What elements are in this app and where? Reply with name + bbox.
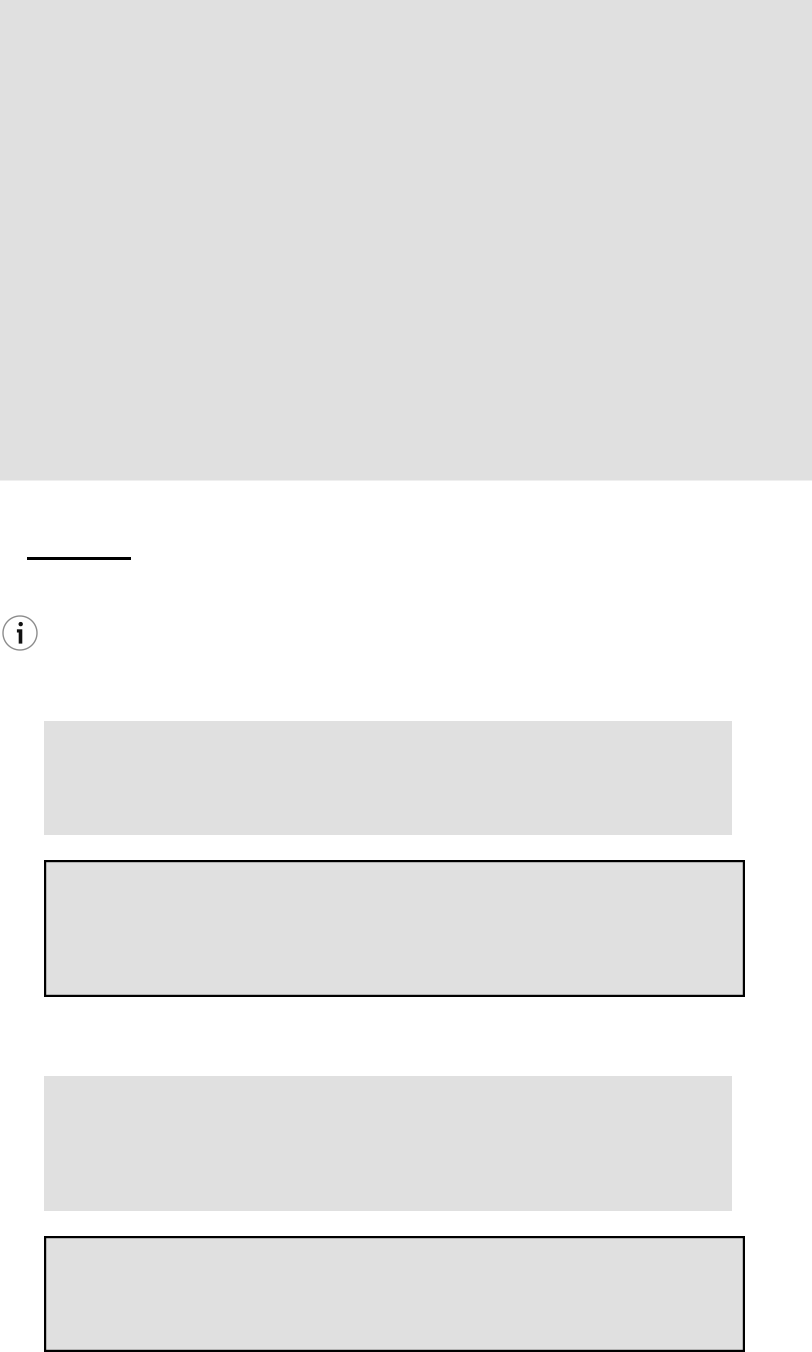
button[interactable]: Image 4 bbox=[44, 1236, 745, 1352]
button[interactable]: Information bbox=[3, 616, 37, 650]
button[interactable]: Image 2 bbox=[44, 860, 745, 997]
